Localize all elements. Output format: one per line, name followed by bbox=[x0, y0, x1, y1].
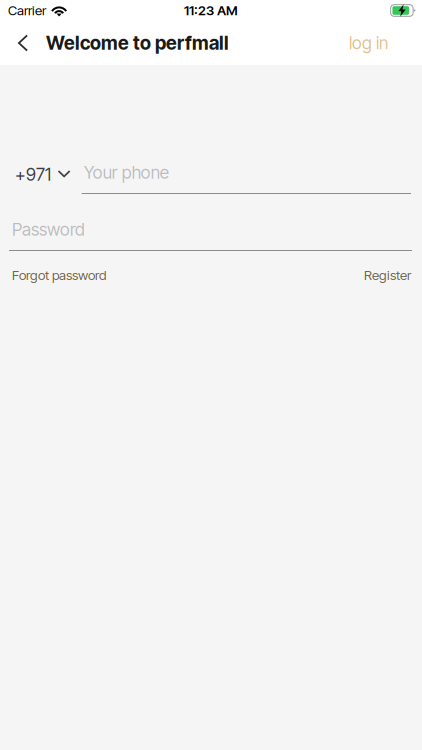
button[interactable]: Your phone bbox=[82, 162, 411, 194]
staticText: +971 bbox=[15, 164, 51, 185]
staticText: Welcome to perfmall bbox=[46, 32, 229, 54]
button[interactable]: Back bbox=[0, 21, 36, 64]
button[interactable]: Password bbox=[9, 219, 412, 251]
staticText: Password bbox=[12, 219, 85, 240]
staticText: Your phone bbox=[84, 162, 169, 183]
button[interactable]: Register bbox=[356, 261, 422, 289]
button[interactable]: Country code +971 bbox=[0, 162, 82, 194]
staticText: log in bbox=[349, 32, 388, 53]
button[interactable]: Forgot password bbox=[0, 261, 114, 289]
staticText: Forgot password bbox=[12, 267, 106, 283]
staticText: 11:23 AM bbox=[184, 2, 238, 18]
button[interactable]: log in bbox=[335, 21, 422, 64]
staticText: Register bbox=[364, 267, 411, 283]
staticText: Carrier bbox=[8, 2, 46, 18]
